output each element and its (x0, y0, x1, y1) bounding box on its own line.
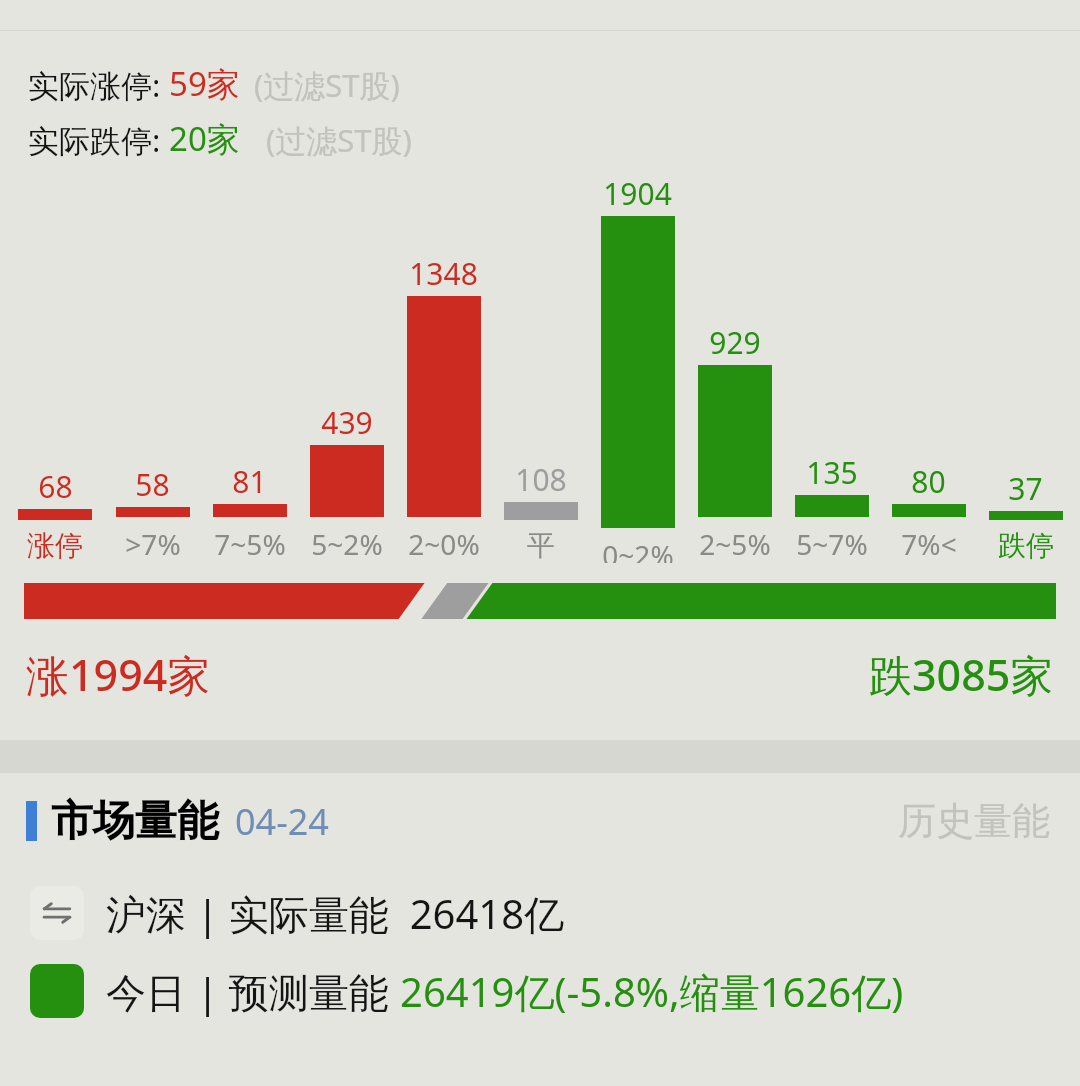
staticText: 跌3085家 (869, 645, 1054, 704)
staticText: 5~7% (796, 525, 868, 563)
staticText: 涨1994家 (26, 645, 211, 704)
button[interactable]: 切换市场 (30, 886, 84, 940)
staticText: (过滤ST股) (254, 64, 400, 106)
staticText: 1904 (603, 173, 672, 214)
staticText: 7~5% (214, 525, 286, 563)
button[interactable]: 历史量能 (894, 793, 1054, 849)
staticText: 04-24 (235, 797, 329, 846)
staticText: 929 (709, 322, 761, 363)
staticText: 59家 (169, 61, 240, 106)
staticText: 5~2% (311, 525, 383, 563)
staticText: 沪深 | 实际量能 26418亿 (106, 886, 565, 941)
staticText: 实际涨停: (28, 64, 169, 106)
staticText: 439 (321, 402, 373, 443)
staticText: 80 (911, 461, 946, 502)
staticText: 涨停 (27, 528, 83, 563)
staticText: 37 (1008, 468, 1043, 509)
staticText: 市场量能 (51, 795, 219, 848)
staticText: 2~5% (699, 525, 771, 563)
staticText: 跌停 (998, 528, 1054, 563)
staticText: 7%< (901, 525, 957, 563)
staticText: 实际跌停: (28, 119, 169, 161)
staticText: 68 (38, 466, 73, 507)
staticText: 26419亿(-5.8%,缩量1626亿) (400, 964, 904, 1019)
staticText: 135 (806, 452, 858, 493)
staticText: 58 (135, 464, 170, 505)
staticText: 1348 (409, 253, 478, 294)
staticText: >7% (125, 525, 181, 563)
staticText: 平 (527, 528, 555, 563)
staticText: 81 (232, 461, 267, 502)
staticText: 今日 | 预测量能 (106, 964, 400, 1019)
staticText: 0~2% (602, 536, 674, 563)
staticText: (过滤ST股) (266, 119, 412, 161)
staticText: 历史量能 (898, 797, 1050, 845)
staticText: 20家 (169, 116, 240, 161)
button[interactable]: 涨跌比例 (24, 583, 1056, 619)
staticText: 2~0% (408, 525, 480, 563)
staticText: 108 (515, 459, 567, 500)
